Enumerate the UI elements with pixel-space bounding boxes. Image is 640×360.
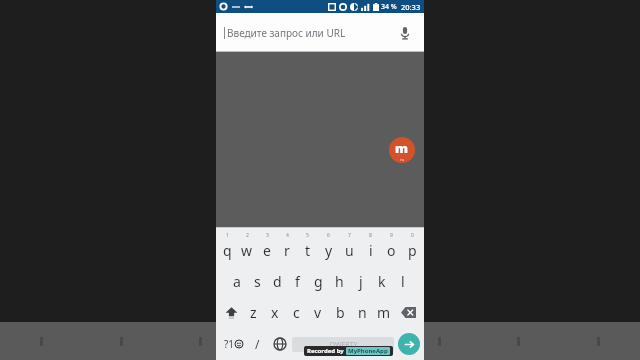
button[interactable]: x: [264, 297, 285, 328]
button[interactable]: Change language: [268, 328, 292, 360]
button[interactable]: v: [307, 297, 329, 328]
button[interactable]: h: [329, 266, 350, 297]
staticText: 20:33: [401, 2, 421, 12]
staticText: x: [271, 303, 279, 322]
staticText: 8: [369, 232, 372, 239]
staticText: y: [325, 241, 333, 260]
staticText: t: [305, 241, 311, 260]
staticText: o: [387, 241, 396, 260]
staticText: u: [345, 241, 354, 260]
staticText: s: [254, 272, 261, 291]
staticText: 4: [286, 232, 289, 239]
button[interactable]: n: [351, 297, 373, 328]
staticText: q: [223, 241, 232, 260]
button[interactable]: Введите запрос или URL: [224, 13, 416, 52]
button[interactable]: 5: [297, 228, 318, 266]
staticText: d: [273, 272, 282, 291]
button[interactable]: 9: [381, 228, 402, 266]
staticText: ?1: [224, 337, 235, 351]
button[interactable]: 2: [237, 228, 257, 266]
button[interactable]: 3: [257, 228, 277, 266]
staticText: e: [263, 241, 271, 260]
button[interactable]: 6: [318, 228, 339, 266]
staticText: m: [395, 139, 409, 157]
staticText: 3: [266, 232, 269, 239]
staticText: 2: [246, 232, 249, 239]
button[interactable]: c: [285, 297, 307, 328]
staticText: g: [314, 272, 323, 291]
button[interactable]: 1: [217, 228, 237, 266]
staticText: n: [358, 303, 367, 322]
button[interactable]: m: [373, 297, 395, 328]
staticText: j: [359, 272, 363, 291]
staticText: 1: [226, 232, 229, 239]
button[interactable]: 7: [339, 228, 360, 266]
staticText: a: [233, 272, 241, 291]
button[interactable]: g: [308, 266, 329, 297]
staticText: 34 %: [381, 2, 397, 12]
staticText: i: [369, 241, 373, 260]
button[interactable]: 8: [360, 228, 381, 266]
staticText: 9: [390, 232, 393, 239]
button[interactable]: s: [247, 266, 267, 297]
staticText: m: [377, 303, 391, 322]
button[interactable]: QWERTY: [292, 337, 394, 352]
button[interactable]: b: [329, 297, 351, 328]
staticText: /: [255, 336, 260, 352]
staticText: w: [241, 241, 253, 260]
button[interactable]: 0: [402, 228, 423, 266]
staticText: 0: [411, 232, 414, 239]
staticText: ru: [400, 157, 405, 162]
button[interactable]: j: [350, 266, 371, 297]
button[interactable]: a: [227, 266, 247, 297]
staticText: MyPhoneApp: [348, 347, 388, 355]
staticText: r: [284, 241, 290, 260]
button[interactable]: f: [287, 266, 308, 297]
button[interactable]: Voice search: [394, 22, 416, 44]
button[interactable]: ?1: [220, 328, 246, 360]
staticText: c: [293, 303, 300, 322]
button[interactable]: d: [267, 266, 287, 297]
button[interactable]: /: [246, 328, 268, 360]
staticText: Введите запрос или URL: [227, 26, 346, 40]
staticText: Recorded by: [307, 347, 344, 355]
button[interactable]: Shift: [219, 297, 243, 328]
button[interactable]: Go: [398, 333, 420, 355]
button[interactable]: k: [371, 266, 392, 297]
staticText: v: [314, 303, 322, 322]
staticText: h: [335, 272, 344, 291]
button[interactable]: Backspace: [395, 297, 421, 328]
button[interactable]: z: [243, 297, 264, 328]
staticText: 7: [348, 232, 351, 239]
staticText: l: [401, 272, 405, 291]
staticText: k: [378, 272, 386, 291]
staticText: z: [250, 303, 257, 322]
button[interactable]: l: [392, 266, 413, 297]
button[interactable]: 4: [277, 228, 297, 266]
staticText: 6: [327, 232, 330, 239]
staticText: 5: [306, 232, 309, 239]
staticText: p: [408, 241, 417, 260]
staticText: f: [295, 272, 300, 291]
staticText: QWERTY: [329, 340, 358, 350]
staticText: b: [336, 303, 345, 322]
